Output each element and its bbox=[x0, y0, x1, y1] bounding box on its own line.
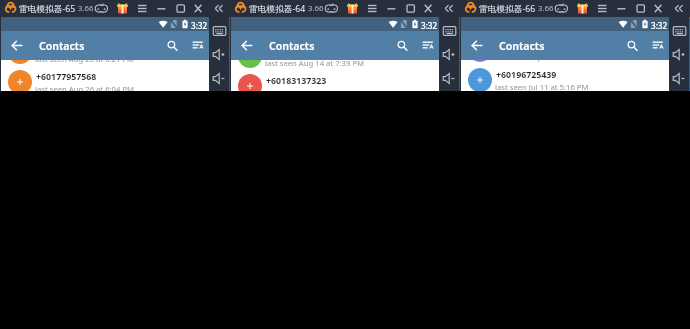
staticText: +60177957568 bbox=[36, 71, 97, 83]
staticText: 雷电模拟器-66 bbox=[479, 3, 536, 15]
button[interactable]: Back bbox=[10, 31, 28, 60]
button[interactable]: Sort bbox=[189, 31, 207, 60]
button[interactable]: Search bbox=[392, 31, 411, 60]
staticText: 3.66 bbox=[78, 3, 94, 14]
staticText: last seen Sep 1 at 9:12 AM bbox=[495, 60, 589, 62]
staticText: 3.66 bbox=[538, 3, 554, 14]
button[interactable]: Back bbox=[240, 31, 258, 60]
button[interactable]: Volume up bbox=[212, 48, 227, 61]
button[interactable]: Volume up bbox=[672, 48, 687, 61]
button[interactable]: +60123456789 bbox=[461, 60, 669, 66]
button[interactable]: Back bbox=[470, 31, 488, 60]
staticText: 3:32 bbox=[191, 20, 208, 31]
staticText: last seen Aug 26 at 6:04 PM bbox=[35, 84, 135, 91]
button[interactable]: +60127366531 bbox=[231, 60, 439, 72]
button[interactable]: Volume down bbox=[442, 72, 457, 85]
staticText: 雷电模拟器-64 bbox=[249, 3, 306, 15]
staticText: 3:32 bbox=[651, 20, 668, 31]
staticText: 3:32 bbox=[421, 20, 438, 31]
staticText: 3.66 bbox=[308, 3, 324, 14]
staticText: 雷电模拟器-65 bbox=[19, 3, 76, 15]
button[interactable]: +60172263316 bbox=[1, 60, 209, 68]
staticText: +60196725439 bbox=[496, 69, 557, 81]
button[interactable]: Keyboard bbox=[442, 25, 457, 37]
staticText: Contacts bbox=[499, 39, 545, 53]
staticText: +60183137323 bbox=[266, 75, 327, 87]
button[interactable]: +60196725439 bbox=[461, 66, 669, 91]
button[interactable]: Volume down bbox=[212, 72, 227, 85]
staticText: Contacts bbox=[39, 39, 85, 53]
button[interactable]: Volume up bbox=[442, 48, 457, 61]
button[interactable]: Keyboard bbox=[212, 25, 227, 37]
button[interactable]: Sort bbox=[419, 31, 437, 60]
button[interactable]: +60177957568 bbox=[1, 68, 209, 91]
button[interactable]: Keyboard bbox=[672, 25, 687, 37]
staticText: last seen Aug 14 at 7:39 PM bbox=[265, 60, 365, 68]
button[interactable]: Search bbox=[622, 31, 641, 60]
button[interactable]: Sort bbox=[649, 31, 667, 60]
staticText: last seen Aug 26 at 6:21 PM bbox=[35, 60, 135, 64]
button[interactable]: +60183137323 bbox=[231, 72, 439, 91]
staticText: Contacts bbox=[269, 39, 315, 53]
button[interactable]: Search bbox=[162, 31, 181, 60]
staticText: last seen Jul 11 at 5:16 PM bbox=[495, 82, 589, 91]
button[interactable]: Volume down bbox=[672, 72, 687, 85]
